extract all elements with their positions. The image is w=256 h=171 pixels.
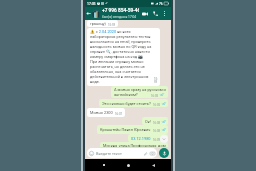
button[interactable]: Video call	[139, 7, 150, 20]
button[interactable]: More options	[160, 7, 168, 20]
staticText: 16:08	[153, 121, 161, 124]
staticText: 16:05	[151, 94, 159, 97]
staticText: Москва, улица Профсоюзная, дом	[103, 143, 166, 148]
button[interactable]: границу)	[87, 20, 118, 27]
staticText: границу)	[90, 21, 106, 26]
button[interactable]: Attach	[143, 151, 148, 156]
staticText: Можно 2300	[90, 110, 113, 115]
button[interactable]: 03.12.1980	[128, 134, 168, 142]
button[interactable]: Contact photo	[92, 10, 100, 18]
staticText: 15:59	[154, 77, 158, 83]
button[interactable]: Scroll to bottom	[160, 135, 168, 143]
staticText: +7 996 854-59-46	[102, 8, 139, 14]
staticText: 76	[159, 2, 163, 6]
button[interactable]: Это сколько будет стоить?	[99, 99, 168, 107]
staticText: был(а) сегодня в 17:04	[102, 15, 137, 19]
staticText: 16:09	[153, 138, 161, 141]
button[interactable]: Можно 2300	[87, 108, 125, 117]
staticText: 16:05	[153, 103, 161, 106]
staticText: английском?	[114, 92, 138, 97]
button[interactable]: Call	[150, 7, 160, 20]
button[interactable]: Home	[122, 159, 134, 171]
staticText: 03.12.1980	[131, 136, 151, 141]
button[interactable]: Кронштейн Павел Юрьевич	[97, 125, 168, 134]
staticText: 16:07	[115, 112, 123, 115]
button[interactable]: Москва, улица Профсоюзная, дом	[100, 142, 168, 151]
staticText: 16:08	[153, 129, 161, 132]
staticText: ⚠️ с 2.04.2020 во всех лабораториях резу…	[90, 29, 152, 84]
staticText: Введите текст	[96, 151, 122, 156]
staticText: 17:35	[87, 2, 96, 6]
button[interactable]: ⚠️ с 2.04.2020 во всех лабораториях резу…	[87, 28, 160, 86]
staticText: 15:59	[108, 23, 116, 26]
button[interactable]: Back	[85, 7, 92, 20]
staticText: Это сколько будет стоить?	[102, 101, 151, 106]
button[interactable]: Recent apps	[98, 159, 110, 171]
staticText: Кронштейн Павел Юрьевич	[100, 127, 151, 132]
button[interactable]: Record voice message	[159, 148, 169, 158]
staticText: А можно сразу на русском и	[114, 87, 166, 92]
button[interactable]: Ок!	[142, 117, 168, 125]
button[interactable]: Back	[147, 159, 159, 171]
button[interactable]: Введите текст	[87, 148, 157, 158]
button[interactable]: А можно сразу на русском и	[111, 86, 168, 98]
button[interactable]: Camera	[150, 151, 155, 156]
staticText: Ок!	[145, 119, 151, 124]
